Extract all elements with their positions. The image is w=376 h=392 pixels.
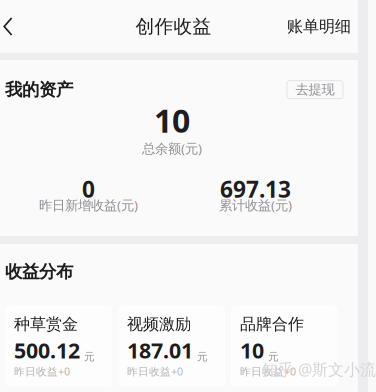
staticText: 种草赏金 (14, 314, 78, 334)
button[interactable]: 去提现 (287, 81, 343, 99)
button[interactable]: 视频激励 (118, 305, 225, 387)
button[interactable]: 品牌合作 (231, 305, 338, 387)
staticText: 元 (197, 350, 208, 363)
staticText: 视频激励 (127, 314, 191, 334)
staticText: 0 (82, 174, 95, 204)
staticText: 697.13 (220, 174, 291, 204)
staticText: 元 (268, 350, 279, 363)
button[interactable]: 账单明细 (273, 0, 358, 53)
staticText: 500.12 (14, 336, 80, 364)
staticText: 账单明细 (287, 17, 351, 36)
button[interactable]: 返回 (0, 0, 25, 53)
staticText: 10 (154, 99, 190, 141)
staticText: 收益分布 (5, 261, 73, 282)
staticText: 昨日新增收益(元) (39, 196, 138, 214)
staticText: 我的资产 (5, 79, 73, 100)
staticText: 去提现 (295, 81, 334, 98)
staticText: 品牌合作 (240, 314, 304, 334)
staticText: 昨日收益+0 (14, 364, 70, 378)
staticText: 累计收益(元) (219, 196, 292, 214)
staticText: 10 (240, 336, 264, 364)
staticText: 创作收益 (135, 15, 211, 38)
staticText: 元 (84, 350, 95, 363)
button[interactable]: 种草赏金 (5, 305, 112, 387)
staticText: 昨日收益+0 (127, 364, 183, 378)
staticText: 187.01 (127, 336, 193, 364)
staticText: 总余额(元) (142, 139, 202, 157)
staticText: 知乎 @斯文小流 (262, 359, 376, 380)
staticText: 昨日收益+0 (240, 364, 296, 378)
